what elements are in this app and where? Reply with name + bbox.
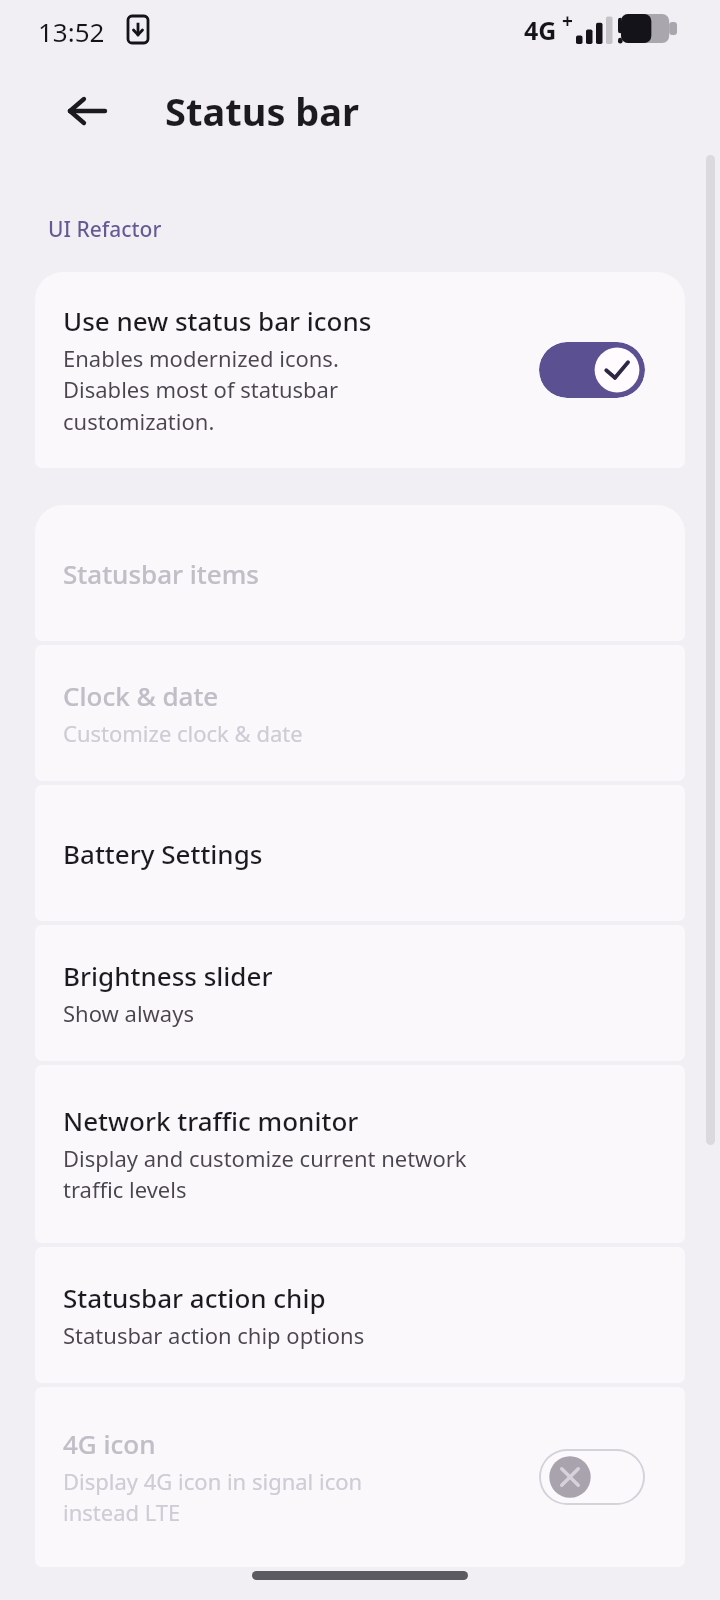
button[interactable]: Brightness slider [35, 925, 685, 1061]
staticText: Show always [63, 998, 194, 1028]
button[interactable]: Battery Settings [35, 785, 685, 921]
button[interactable]: Enabled toggle, on [539, 342, 645, 398]
button[interactable]: Statusbar action chip [35, 1247, 685, 1383]
staticText: + [562, 8, 573, 34]
button[interactable]: Network traffic monitor [35, 1065, 685, 1243]
staticText: Display 4G icon in signal icon instead L… [63, 1466, 363, 1528]
staticText: Network traffic monitor [63, 1103, 359, 1138]
staticText: Brightness slider [63, 958, 273, 993]
staticText: 4G icon [63, 1426, 156, 1461]
staticText: UI Refactor [48, 215, 162, 244]
staticText: 13:52 [38, 14, 105, 49]
button[interactable]: UI Refactor [48, 215, 162, 244]
button[interactable]: Statusbar items [35, 505, 685, 641]
button[interactable]: Toggle, off [539, 1449, 645, 1505]
staticText: Statusbar items [63, 556, 259, 591]
staticText: Battery Settings [63, 836, 263, 871]
staticText: Enables modernized icons. Disables most … [63, 343, 339, 437]
staticText: Status bar [165, 85, 360, 137]
staticText: 4G [524, 13, 557, 47]
button[interactable]: Clock & date [35, 645, 685, 781]
staticText: Customize clock & date [63, 718, 303, 748]
button[interactable]: Use new status bar icons [35, 272, 685, 468]
staticText: Display and customize current network tr… [63, 1143, 467, 1205]
staticText: Use new status bar icons [63, 303, 372, 338]
staticText: Statusbar action chip options [63, 1320, 365, 1350]
staticText: Statusbar action chip [63, 1280, 326, 1315]
staticText: Clock & date [63, 678, 219, 713]
button[interactable]: 4G icon [35, 1387, 685, 1567]
button[interactable]: Back [48, 81, 126, 141]
